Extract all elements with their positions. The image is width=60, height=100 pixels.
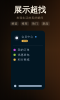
staticText: 新品 <box>43 22 49 25</box>
staticText: 积分商城 <box>18 58 30 61</box>
staticText: 推荐 <box>22 22 28 25</box>
staticText: 我的订单 <box>18 48 30 52</box>
button[interactable]: 优惠券包 <box>11 52 45 57</box>
button[interactable]: 我的订单 <box>11 47 45 52</box>
staticText: 精选 <box>11 22 17 25</box>
staticText: 优惠券包 <box>18 53 30 56</box>
button[interactable]: 积分商城 <box>11 57 45 62</box>
staticText: 发现生活的美好瞬间 <box>16 16 43 20</box>
staticText: 展示超找 <box>14 5 46 15</box>
staticText: 立即开通 <box>23 40 27 42</box>
staticText: 会员中心 <box>21 35 33 38</box>
staticText: 热门 <box>32 22 38 25</box>
